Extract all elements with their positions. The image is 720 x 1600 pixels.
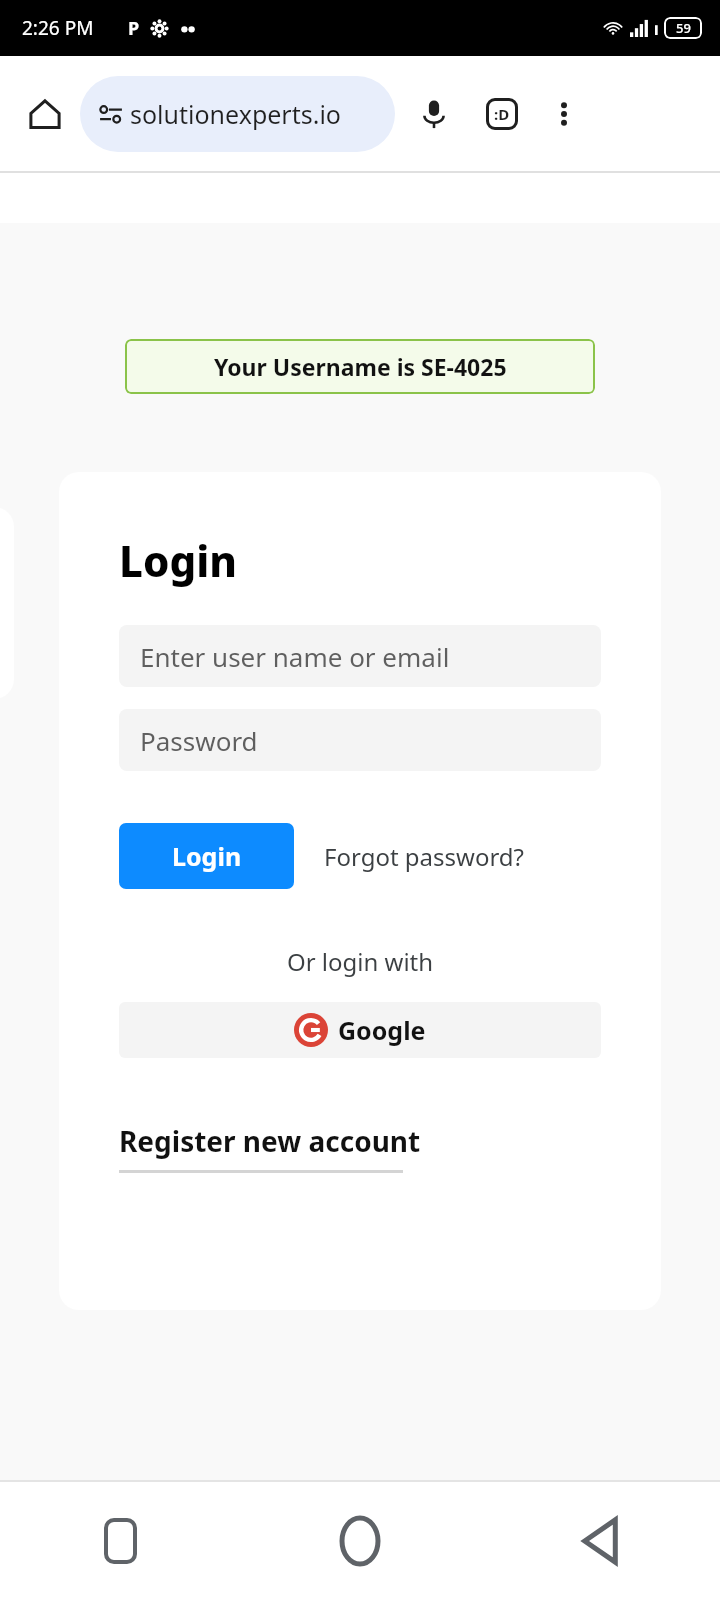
staticText: P: [128, 16, 140, 41]
button[interactable]: Home: [18, 87, 72, 141]
button[interactable]: Recent apps: [0, 1482, 240, 1600]
staticText: Register new account: [119, 1122, 421, 1160]
staticText: 59: [676, 19, 691, 37]
button[interactable]: Login: [119, 823, 294, 889]
button[interactable]: Tabs: [475, 87, 529, 141]
staticText: Login: [172, 839, 242, 873]
button[interactable]: Voice search: [407, 87, 461, 141]
staticText: Login: [119, 532, 237, 589]
button[interactable]: Back: [480, 1482, 720, 1600]
button[interactable]: More options: [539, 89, 589, 139]
staticText: Google: [338, 1013, 426, 1047]
staticText: :D: [494, 104, 510, 124]
staticText: Enter user name or email: [140, 639, 450, 674]
button[interactable]: Forgot password?: [320, 836, 529, 877]
staticText: Password: [140, 723, 258, 758]
staticText: solutionexperts.io: [130, 97, 341, 131]
staticText: Your Username is SE-4025: [214, 351, 507, 382]
staticText: Forgot password?: [324, 840, 525, 873]
button[interactable]: Google: [119, 1002, 601, 1058]
button[interactable]: Home: [240, 1482, 480, 1600]
staticText: 2:26 PM: [22, 15, 94, 41]
button[interactable]: Password: [119, 709, 601, 771]
button[interactable]: Register new account: [119, 1122, 421, 1173]
button[interactable]: Your Username is SE-4025: [125, 339, 595, 394]
staticText: Or login with: [59, 945, 661, 978]
button[interactable]: solutionexperts.io: [80, 76, 395, 152]
button[interactable]: Enter user name or email: [119, 625, 601, 687]
